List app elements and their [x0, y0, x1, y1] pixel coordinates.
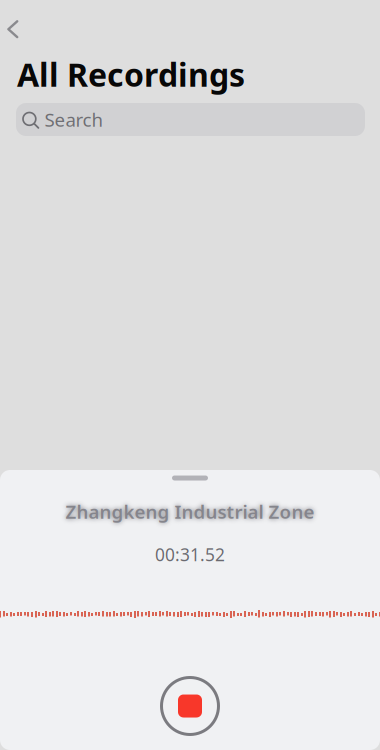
staticText: Search — [44, 107, 103, 132]
staticText: 00:31.52 — [155, 543, 225, 566]
button[interactable]: Stop recording — [154, 670, 226, 742]
button[interactable]: Back — [0, 0, 44, 44]
staticText: All Recordings — [17, 53, 245, 95]
staticText: Zhangkeng Industrial Zone — [65, 499, 314, 524]
button[interactable]: Search — [16, 103, 365, 136]
